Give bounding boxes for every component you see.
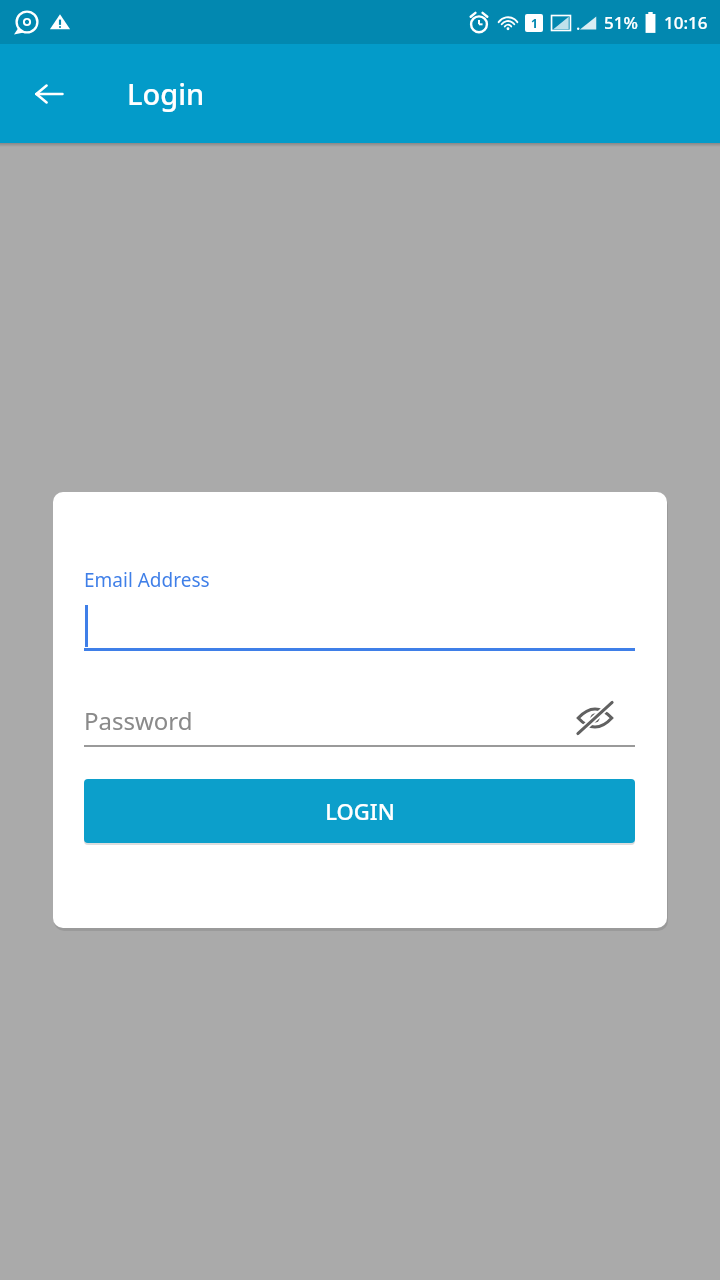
staticText: 51% [604, 11, 638, 34]
button[interactable]: Back [25, 70, 73, 118]
staticText: Password [84, 704, 193, 737]
button[interactable]: Password [84, 695, 635, 745]
button[interactable]: Toggle password visibility [567, 690, 623, 746]
staticText: 1 [531, 15, 538, 31]
staticText: 10:16 [664, 11, 708, 34]
button[interactable]: LOGIN [84, 779, 635, 843]
staticText: Email Address [84, 567, 210, 593]
button[interactable] [84, 597, 635, 652]
staticText: LOGIN [325, 796, 395, 826]
staticText: Login [127, 74, 205, 113]
